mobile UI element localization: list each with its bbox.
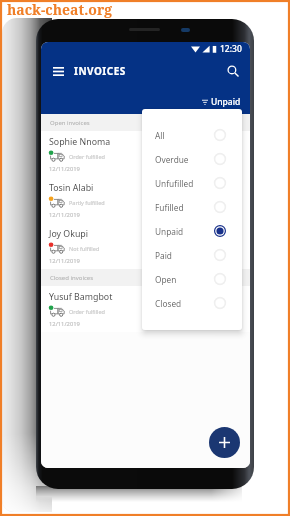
staticText: Closed — [155, 298, 182, 309]
staticText: Overdue — [155, 154, 189, 165]
staticText: Partly fulfilled — [69, 199, 105, 206]
staticText: Unpaid — [155, 226, 184, 237]
staticText: Unpaid — [211, 96, 241, 108]
staticText: Open — [155, 274, 177, 285]
staticText: Paid — [155, 250, 172, 261]
button[interactable]: Closed — [142, 291, 242, 315]
staticText: Not fulfilled — [69, 245, 100, 252]
staticText: 12/11/2019 — [49, 165, 80, 173]
staticText: 12/11/2019 — [49, 320, 80, 328]
staticText: Tosin Alabi — [49, 182, 94, 194]
staticText: Yusuf Bamgbot — [49, 291, 113, 303]
staticText: Joy Okupi — [49, 228, 89, 240]
button[interactable]: Overdue — [142, 147, 242, 171]
button[interactable]: All — [142, 123, 242, 147]
button[interactable]: Tosin Alabi — [41, 177, 250, 223]
button[interactable]: Unfufilled — [142, 171, 242, 195]
button[interactable]: Open — [142, 267, 242, 291]
staticText: 12:30 — [220, 43, 242, 55]
staticText: 12/11/2019 — [49, 211, 80, 219]
button[interactable]: Unpaid — [142, 219, 242, 243]
staticText: hack-cheat.org — [7, 0, 113, 19]
staticText: Fufilled — [155, 202, 184, 213]
button[interactable]: Open navigation menu — [48, 61, 68, 81]
button[interactable]: Unpaid — [202, 96, 241, 108]
staticText: Open invoices — [50, 119, 90, 127]
button[interactable]: Sophie Nnoma — [41, 131, 250, 177]
staticText: 12/11/2019 — [49, 257, 80, 265]
staticText: Closed invoices — [50, 274, 94, 282]
staticText: Sophie Nnoma — [49, 136, 111, 148]
staticText: All — [155, 130, 165, 141]
button[interactable]: Search — [223, 61, 243, 81]
staticText: Order fulfilled — [69, 153, 105, 160]
button[interactable]: Create new invoice — [209, 427, 240, 458]
button[interactable]: Joy Okupi — [41, 223, 250, 269]
button[interactable]: Yusuf Bamgbot — [41, 286, 250, 332]
staticText: INVOICES — [74, 64, 126, 78]
staticText: Order fulfilled — [69, 308, 105, 315]
button[interactable]: Fufilled — [142, 195, 242, 219]
staticText: Unfufilled — [155, 178, 194, 189]
button[interactable]: Paid — [142, 243, 242, 267]
